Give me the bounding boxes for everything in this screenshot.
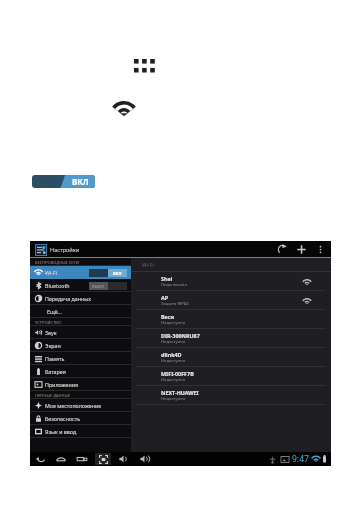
staticText: Память [45,355,65,362]
button[interactable]: Звук [30,326,131,339]
staticText: dlink4D [161,351,182,358]
staticText: Мое местоположение [45,402,102,409]
button[interactable]: Веси [131,310,331,329]
staticText: Недоступно [161,358,186,364]
staticText: Ещё... [47,308,62,315]
button[interactable]: Экран [30,339,131,352]
staticText: Батарея [45,368,66,375]
button[interactable]: Приложения [30,378,131,391]
staticText: DIR-300NRU87 [161,332,200,339]
staticText: Язык и ввод [45,428,77,435]
staticText: Веси [161,313,175,320]
staticText: Звук [45,329,57,336]
staticText: Wi-Fi [142,261,154,268]
button[interactable]: AP [131,291,331,310]
button[interactable]: Refresh [277,244,288,255]
button[interactable]: Мое местоположение [30,399,131,412]
staticText: Экран [45,342,61,349]
button[interactable]: ВКЛ [32,175,95,188]
button[interactable]: Язык и ввод [30,425,131,438]
button[interactable]: Wi-Fi [115,101,133,116]
staticText: NEXT-HUAWEI [161,389,199,396]
staticText: Wi-Fi [45,269,58,276]
staticText: Shel [161,275,173,282]
staticText: Недоступно [161,396,186,402]
button[interactable]: NEXT-HUAWEI [131,386,331,405]
staticText: 9:47 [292,453,309,465]
staticText: ЛИЧНЫЕ ДАННЫЕ [35,393,71,398]
staticText: ВКЛ [113,271,122,276]
staticText: Недоступно [161,377,186,383]
button[interactable]: ВЫКЛ [89,282,127,290]
button[interactable]: dlink4D [131,348,331,367]
button[interactable]: Add network [296,244,307,255]
staticText: Подключено [161,282,187,288]
staticText: Bluetooth [45,282,70,289]
button[interactable]: Безопасность [30,412,131,425]
button[interactable]: Wi-Fi [30,266,131,279]
staticText: Недоступно [161,320,186,326]
button[interactable]: Volume up [140,454,150,464]
staticText: Настройки [50,246,80,254]
button[interactable]: Shel [131,272,331,291]
staticText: MIFI-00FF7B [161,370,194,377]
staticText: Передача данных [45,295,91,302]
button[interactable]: DIR-300NRU87 [131,329,331,348]
staticText: Защита WPA2 [161,301,189,307]
button[interactable]: Bluetooth [30,279,131,292]
staticText: Безопасность [45,415,81,422]
button[interactable]: Home [56,454,66,464]
button[interactable]: Back [35,454,45,464]
staticText: ВКЛ [72,176,89,187]
button[interactable]: Screenshot [99,455,108,464]
button[interactable]: MIFI-00FF7B [131,367,331,386]
button[interactable]: Память [30,352,131,365]
staticText: БЕСПРОВОДНЫЕ СЕТИ [35,260,79,265]
button[interactable]: All apps [134,59,155,73]
staticText: ВЫКЛ [92,284,105,289]
staticText: Приложения [45,381,78,388]
button[interactable]: Volume down [119,454,129,464]
staticText: AP [161,294,169,301]
button[interactable]: More options [315,244,326,255]
button[interactable]: Recents [77,454,87,464]
button[interactable]: Батарея [30,365,131,378]
button[interactable]: Передача данных [30,292,131,305]
staticText: Недоступно [161,339,186,345]
staticText: УСТРОЙСТВО [35,320,62,325]
button[interactable]: ВКЛ [89,269,127,277]
button[interactable]: Ещё... [30,305,131,318]
